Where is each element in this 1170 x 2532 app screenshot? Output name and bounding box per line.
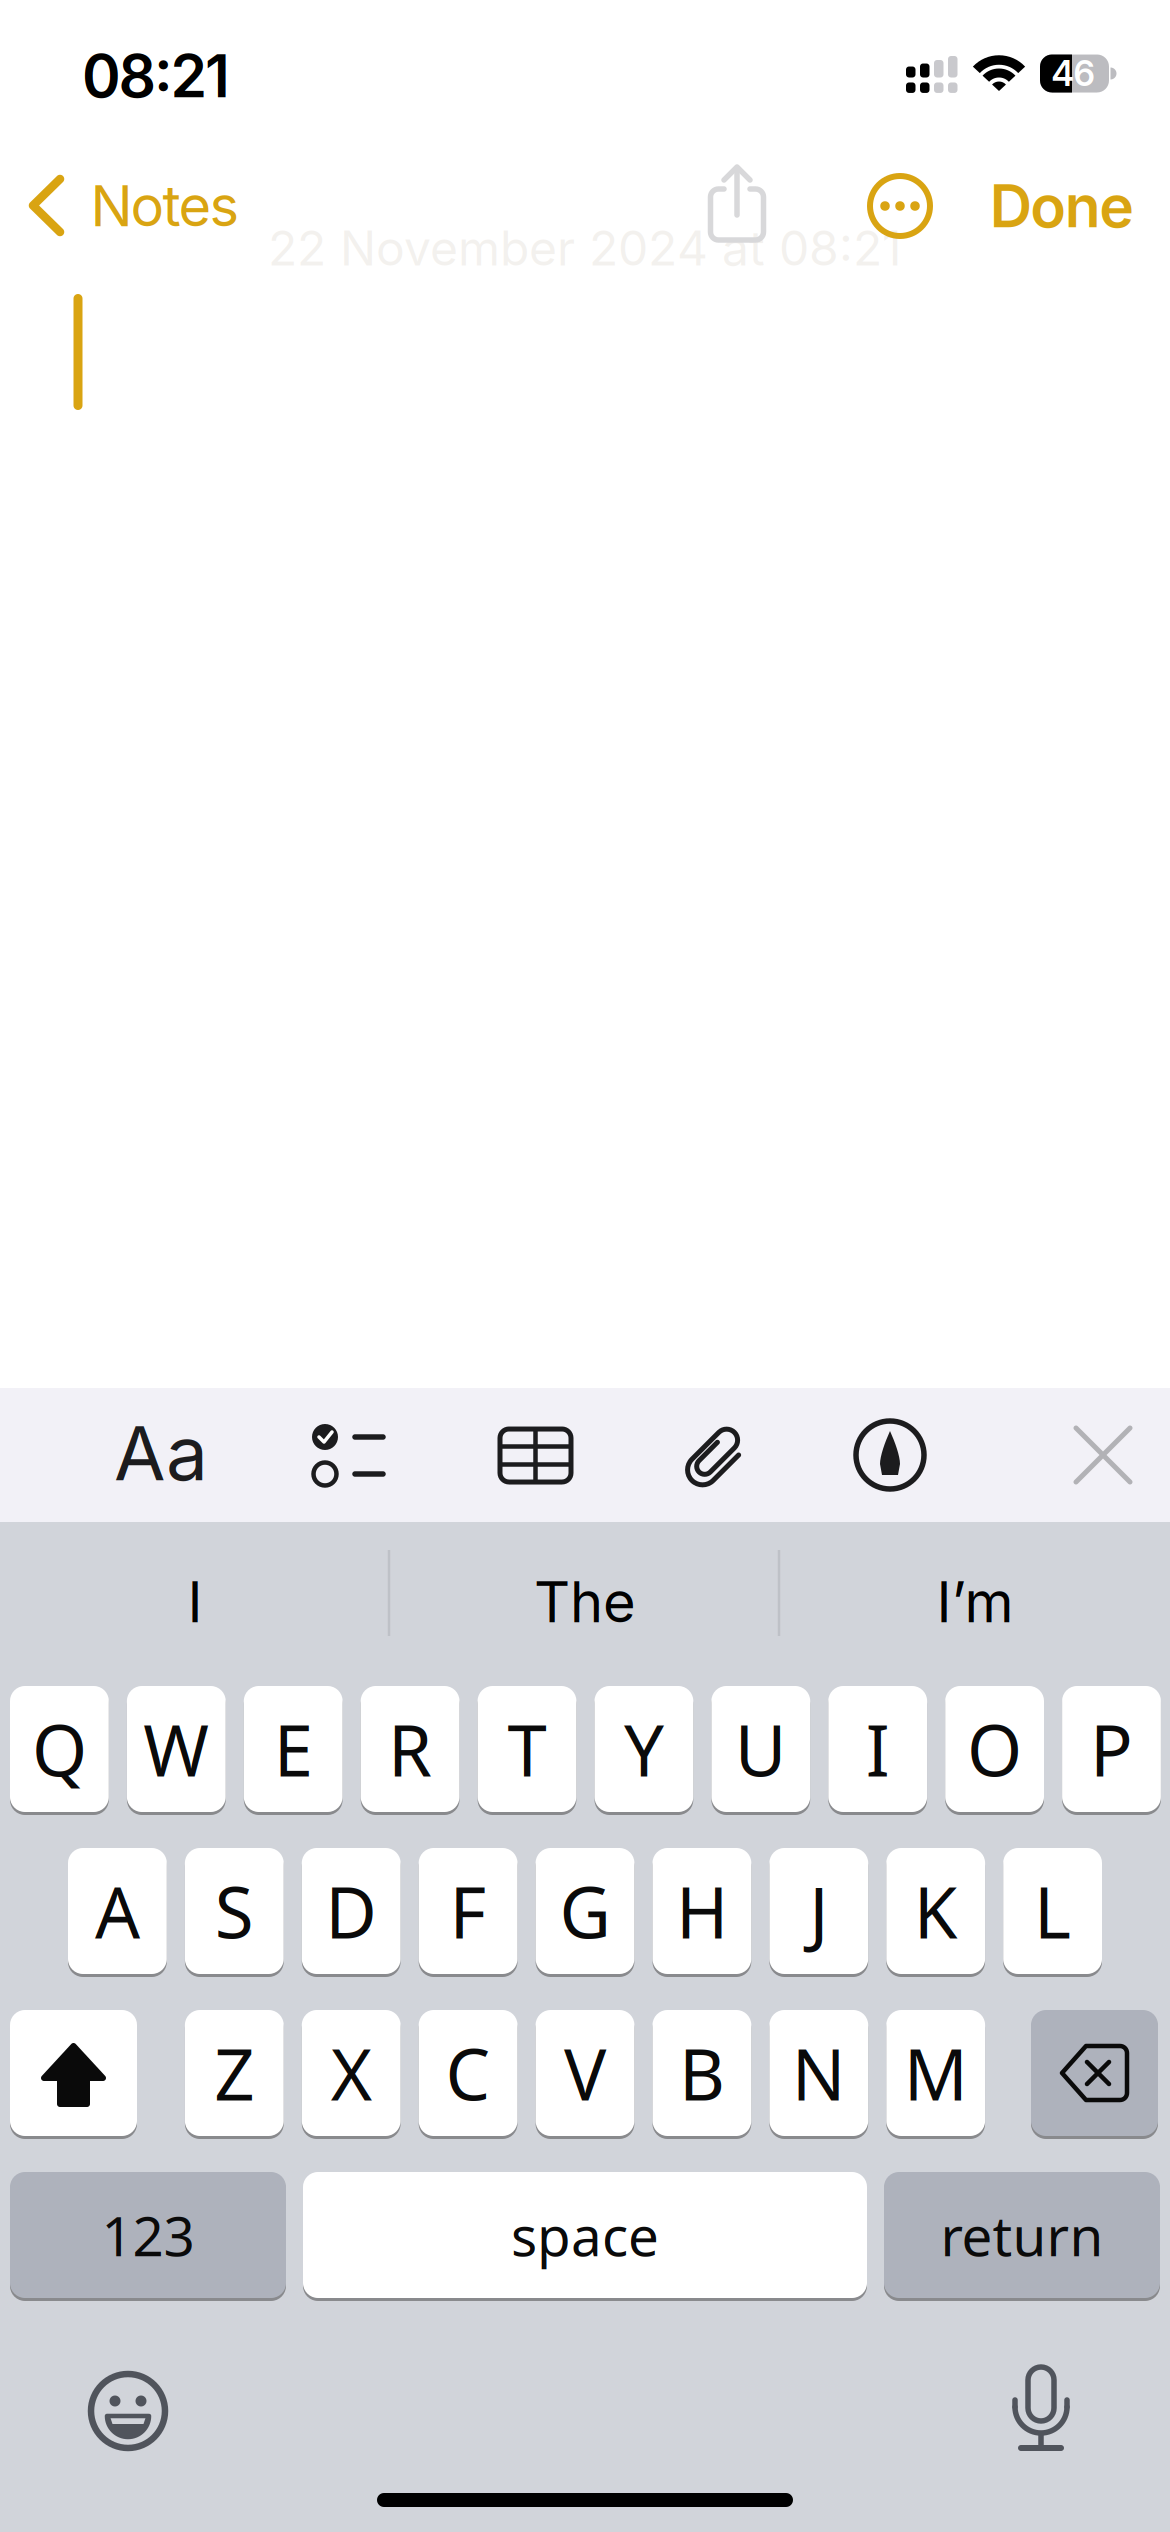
staticText: W	[143, 1702, 209, 1796]
staticText: A	[95, 1864, 140, 1958]
button[interactable]: Done	[990, 170, 1134, 241]
staticText: E	[274, 1702, 313, 1796]
button[interactable]: I	[828, 1684, 927, 1814]
button[interactable]: H	[652, 1846, 751, 1976]
button[interactable]	[993, 2359, 1089, 2455]
button[interactable]: C	[419, 2008, 517, 2138]
staticText: L	[1034, 1864, 1071, 1958]
button[interactable]: D	[302, 1846, 401, 1976]
button[interactable]: F	[419, 1846, 517, 1976]
button[interactable]: A	[68, 1846, 167, 1976]
button[interactable]: O	[945, 1684, 1044, 1814]
button[interactable]	[10, 2008, 137, 2138]
button[interactable]: G	[536, 1846, 634, 1976]
button[interactable]: 123	[10, 2170, 286, 2300]
staticText: F	[450, 1864, 487, 1958]
button[interactable]: M	[886, 2008, 985, 2138]
button[interactable]: return	[884, 2170, 1160, 2300]
button[interactable]: U	[711, 1684, 810, 1814]
staticText: 22 November 2024 at 08:21	[268, 219, 902, 277]
staticText: 08:21	[82, 40, 230, 111]
button[interactable]	[840, 1405, 940, 1505]
staticText: B	[679, 2026, 725, 2120]
button[interactable]	[1031, 2008, 1158, 2138]
staticText: S	[215, 1864, 254, 1958]
button[interactable]	[485, 1405, 585, 1505]
button[interactable]	[861, 167, 939, 245]
staticText: C	[446, 2026, 491, 2120]
staticText: T	[507, 1702, 546, 1796]
staticText: V	[564, 2026, 606, 2120]
staticText: K	[914, 1864, 958, 1958]
button[interactable]: I	[7, 1537, 383, 1667]
button[interactable]	[691, 158, 783, 250]
button[interactable]: Notes	[10, 164, 250, 248]
button[interactable]	[298, 1405, 398, 1505]
button[interactable]: X	[302, 2008, 401, 2138]
button[interactable]: R	[361, 1684, 459, 1814]
staticText: H	[676, 1864, 728, 1958]
button[interactable]	[1058, 1410, 1148, 1500]
button[interactable]	[80, 2363, 176, 2459]
staticText: The	[534, 1568, 636, 1636]
button[interactable]: I’m	[787, 1537, 1163, 1667]
staticText: Aa	[114, 1408, 208, 1498]
button[interactable]: space	[303, 2170, 867, 2300]
staticText: N	[792, 2026, 846, 2120]
button[interactable]: W	[127, 1684, 226, 1814]
staticText: Y	[624, 1702, 664, 1796]
staticText: U	[735, 1702, 787, 1796]
staticText: I	[866, 1702, 890, 1796]
button[interactable]: B	[652, 2008, 751, 2138]
staticText: Q	[32, 1702, 87, 1796]
staticText: P	[1090, 1702, 1133, 1796]
staticText: D	[325, 1864, 377, 1958]
staticText: 46	[1051, 52, 1094, 94]
button[interactable]: N	[769, 2008, 868, 2138]
staticText: Done	[990, 170, 1134, 241]
staticText: R	[388, 1702, 432, 1796]
staticText: M	[904, 2026, 968, 2120]
button[interactable]: K	[886, 1846, 985, 1976]
button[interactable]: Q	[10, 1684, 109, 1814]
button[interactable]: L	[1003, 1846, 1102, 1976]
staticText: I	[187, 1568, 202, 1636]
staticText: O	[967, 1702, 1022, 1796]
staticText: space	[511, 2199, 659, 2271]
button[interactable]: P	[1062, 1684, 1161, 1814]
staticText: G	[559, 1864, 610, 1958]
staticText: Z	[214, 2026, 254, 2120]
button[interactable]: Z	[185, 2008, 284, 2138]
button[interactable]	[666, 1405, 766, 1505]
button[interactable]: Y	[594, 1684, 693, 1814]
staticText: I’m	[936, 1568, 1013, 1636]
button[interactable]: T	[478, 1684, 576, 1814]
staticText: Notes	[90, 172, 239, 240]
button[interactable]: V	[536, 2008, 634, 2138]
staticText: return	[940, 2199, 1103, 2271]
staticText: X	[331, 2026, 372, 2120]
button[interactable]: E	[244, 1684, 343, 1814]
button[interactable]: The	[397, 1537, 773, 1667]
staticText: J	[809, 1864, 828, 1958]
button[interactable]: Aa	[106, 1398, 216, 1508]
button[interactable]: S	[185, 1846, 284, 1976]
staticText: 123	[101, 2199, 194, 2271]
button[interactable]: J	[769, 1846, 868, 1976]
